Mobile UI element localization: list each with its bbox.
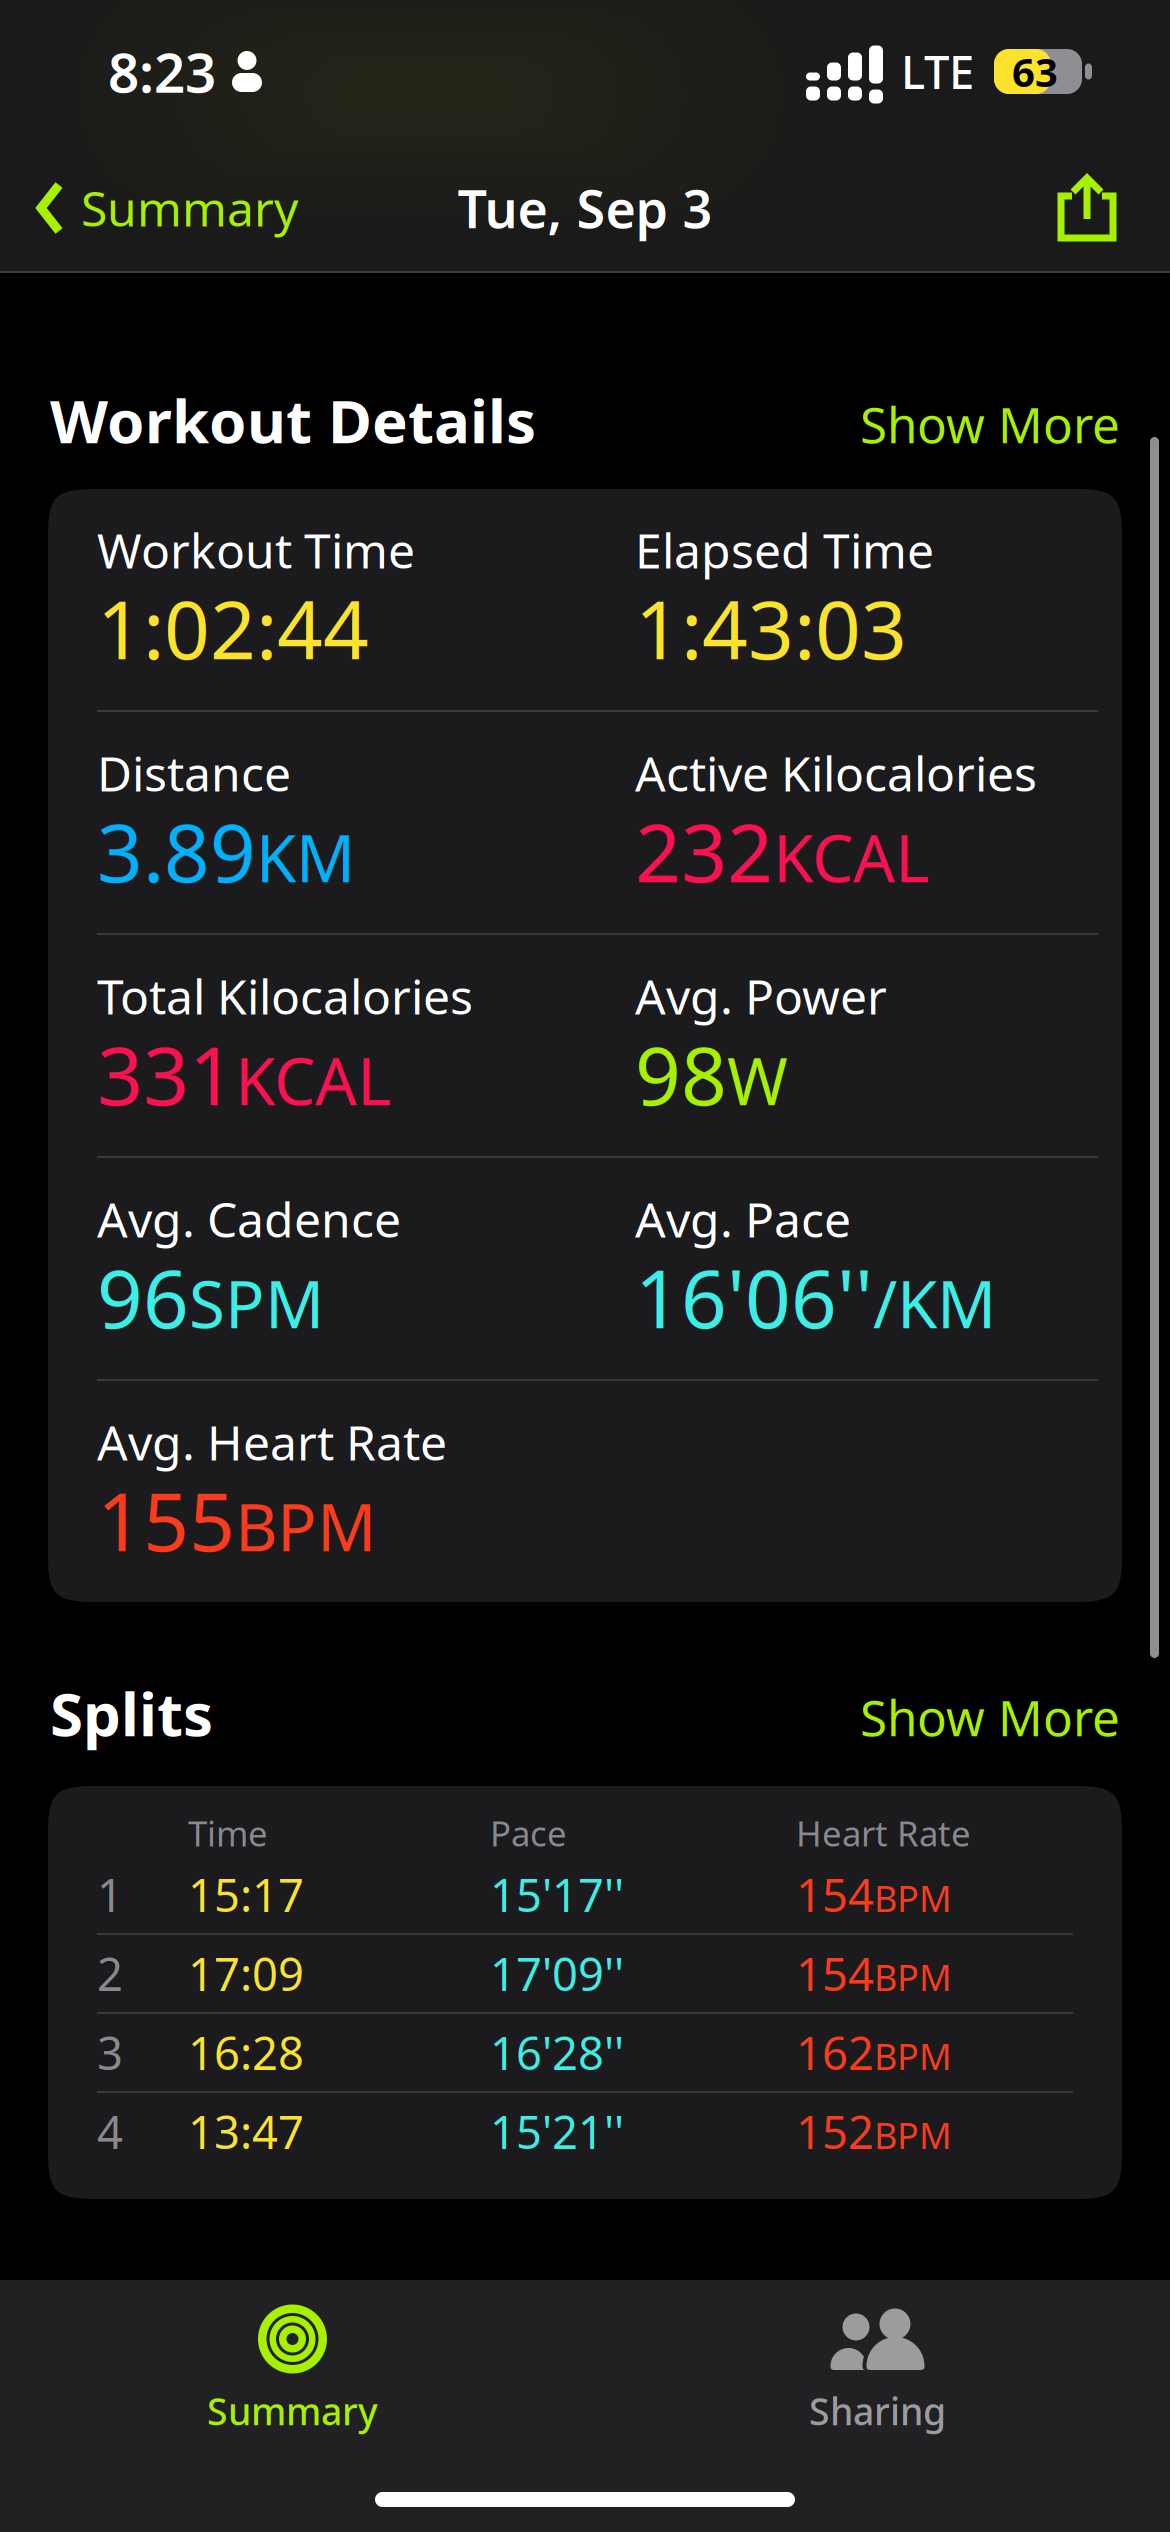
staticText: KCAL [235,1036,391,1123]
staticText: 15'17'' [490,1864,624,1925]
button[interactable]: Summary [0,156,298,260]
staticText: Show More [860,1684,1120,1750]
staticText: LTE [901,41,974,102]
staticText: BPM [874,2111,952,2159]
staticText: 3.89 [97,798,256,904]
staticText: 1 [97,1864,123,1925]
staticText: Distance [97,741,291,805]
staticText: Time [188,1810,268,1856]
staticText: 152 [796,2101,874,2162]
staticText: Summary [81,176,298,240]
staticText: 13:47 [188,2101,304,2162]
staticText: KCAL [773,813,929,900]
staticText: Avg. Pace [635,1187,851,1251]
staticText: Workout Time [97,518,415,582]
staticText: 331 [97,1021,235,1127]
button[interactable]: Show More [860,391,1120,457]
staticText: Active Kilocalories [635,741,1037,805]
staticText: 1:43:03 [635,575,907,681]
staticText: /KM [873,1259,996,1346]
staticText: 4 [97,2101,123,2162]
staticText: Elapsed Time [635,518,934,582]
button[interactable]: Show More [860,1684,1120,1750]
staticText: Avg. Cadence [97,1187,401,1251]
staticText: 16'28'' [490,2022,624,2083]
staticText: Total Kilocalories [97,964,473,1028]
staticText: 1:02:44 [97,575,369,681]
staticText: BPM [874,1874,952,1922]
staticText: 15'21'' [490,2101,624,2162]
staticText: 17'09'' [490,1943,624,2004]
staticText: Avg. Heart Rate [97,1410,447,1474]
staticText: 15:17 [188,1864,304,1925]
staticText: Heart Rate [796,1810,971,1856]
staticText: BPM [874,2032,952,2080]
staticText: SPM [189,1259,324,1346]
staticText: 16:28 [188,2022,304,2083]
button[interactable]: Summary [142,2304,442,2430]
staticText: W [727,1036,788,1123]
staticText: Show More [860,391,1120,457]
staticText: Sharing [809,2386,946,2436]
staticText: Workout Details [50,380,536,460]
staticText: 155 [97,1467,235,1573]
staticText: 2 [97,1943,123,2004]
button[interactable]: Sharing [727,2304,1027,2430]
staticText: 162 [796,2022,874,2083]
staticText: 8:23 [108,35,216,108]
staticText: 154 [796,1864,874,1925]
staticText: BPM [235,1482,376,1569]
staticText: Pace [490,1810,567,1856]
staticText: 17:09 [188,1943,304,2004]
staticText: BPM [874,1953,952,2001]
staticText: 98 [635,1021,727,1127]
staticText: 154 [796,1943,874,2004]
staticText: Summary [207,2386,378,2436]
staticText: Splits [50,1673,213,1753]
staticText: 3 [97,2022,123,2083]
staticText: Avg. Power [635,964,887,1028]
staticText: 63 [1012,45,1058,98]
staticText: 232 [635,798,773,904]
staticText: KM [256,813,355,900]
staticText: Tue, Sep 3 [457,173,712,243]
staticText: 96 [97,1244,189,1350]
staticText: 16'06'' [635,1244,873,1350]
button[interactable]: Share [1054,154,1170,262]
